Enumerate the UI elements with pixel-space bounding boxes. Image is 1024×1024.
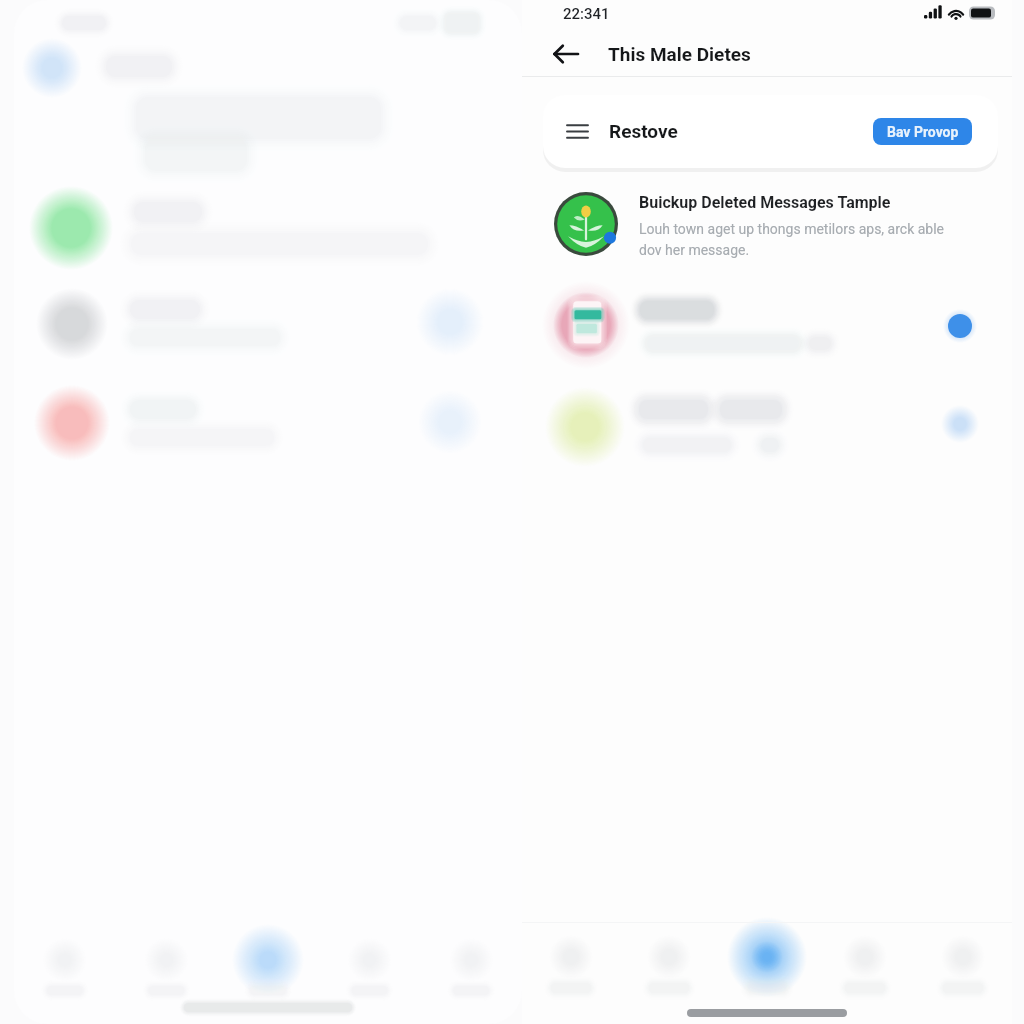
button[interactable]: Tab 5 [914, 914, 1012, 1000]
staticText: Buickup Deleted Messages Tample [639, 193, 891, 212]
staticText: Bav Provop [887, 124, 959, 140]
button[interactable]: Tab 3 [718, 914, 816, 1000]
button[interactable] [543, 95, 998, 168]
staticText: Restove [609, 120, 678, 142]
staticText: 22:341 [563, 5, 610, 23]
button[interactable]: Media backup [546, 388, 942, 462]
staticText: Louh town aget up thongs metilors aps, a… [639, 221, 945, 258]
button[interactable]: Bav Provop [873, 118, 972, 145]
button[interactable]: Tab 1 [522, 914, 620, 1000]
button[interactable]: Restore backup [946, 312, 976, 342]
button[interactable]: Restore media [946, 410, 976, 440]
button[interactable]: Tab 4 [816, 914, 914, 1000]
button[interactable]: Tab 2 [620, 914, 718, 1000]
button[interactable]: Menu [555, 112, 599, 150]
staticText: This Male Dietes [608, 43, 751, 65]
button[interactable] [546, 186, 988, 264]
button[interactable]: Messages backup [546, 288, 942, 364]
button[interactable]: Back [544, 32, 588, 76]
